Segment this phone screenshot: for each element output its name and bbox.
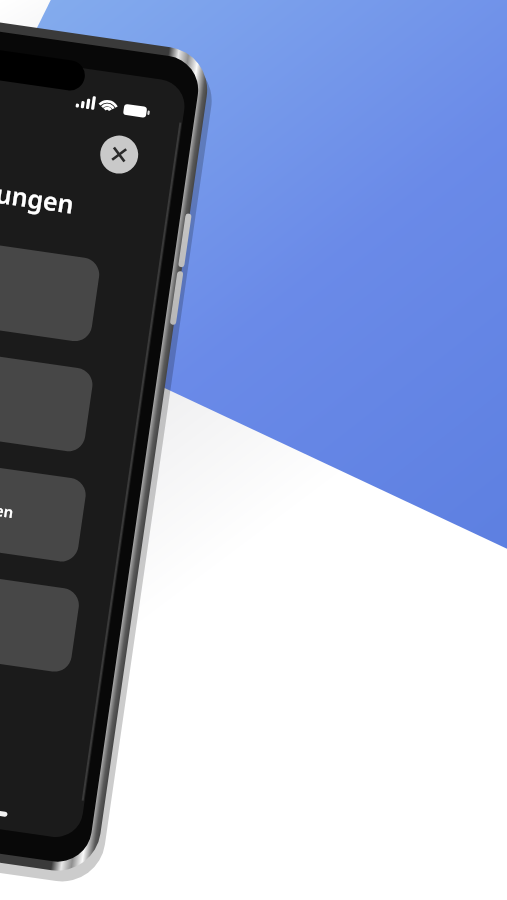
button[interactable] [0, 420, 120, 498]
button[interactable]: Close [70, 173, 108, 211]
button[interactable] [0, 520, 135, 600]
button[interactable] [0, 310, 110, 388]
button[interactable] [0, 625, 150, 705]
